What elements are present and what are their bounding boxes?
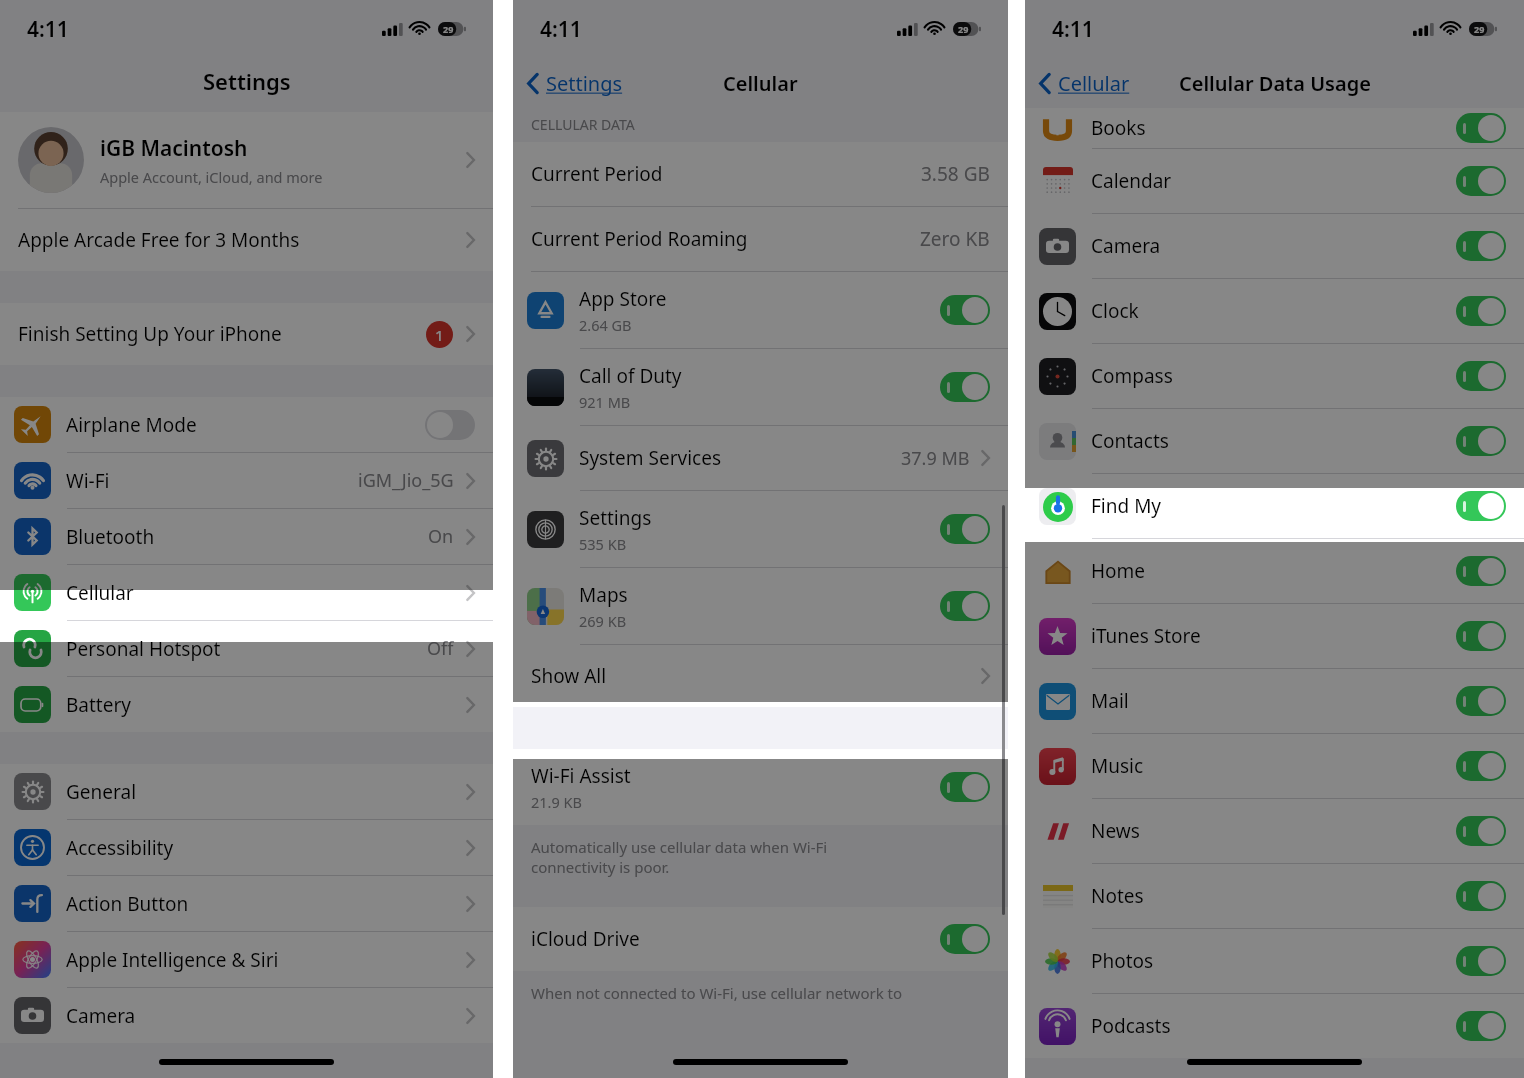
button[interactable]: Podcasts [1025,994,1524,1058]
staticText: Cellular Data Usage [1179,70,1371,97]
button[interactable]: Compass [1025,344,1524,408]
staticText: 29 [958,23,969,35]
staticText: Settings [579,505,652,531]
button[interactable]: System Services [513,426,1008,490]
button[interactable]: Toggle [940,591,990,621]
button[interactable]: Toggle [1456,361,1506,391]
staticText: 29 [443,23,454,35]
button[interactable]: Finish Setting Up Your iPhone [0,303,493,365]
button[interactable]: Toggle [1456,751,1506,781]
button[interactable]: App Store [513,272,1008,348]
button[interactable]: Bluetooth [0,509,493,564]
staticText: Zero KB [920,226,990,252]
staticText: Podcasts [1091,1013,1171,1039]
button[interactable]: Photos [1025,929,1524,993]
button[interactable]: News [1025,799,1524,863]
button[interactable]: Call of Duty [513,349,1008,425]
button[interactable]: Current Period Roaming [513,207,1008,271]
staticText: Compass [1091,363,1173,389]
staticText: Clock [1091,298,1139,324]
staticText: Personal Hotspot [66,636,221,662]
staticText: 921 MB [579,392,631,412]
button[interactable]: Home [1025,539,1524,603]
staticText: iGM_Jio_5G [358,468,454,493]
button[interactable]: Show All [513,645,1008,707]
staticText: Finish Setting Up Your iPhone [18,321,282,347]
button[interactable]: Action Button [0,876,493,931]
staticText: Calendar [1091,168,1172,194]
button[interactable]: Toggle [1456,556,1506,586]
button[interactable]: Battery [0,677,493,732]
button[interactable]: Airplane Mode [0,397,493,452]
staticText: 4:11 [27,15,69,44]
button[interactable]: Toggle [1456,113,1506,143]
button[interactable]: Toggle [940,295,990,325]
staticText: Action Button [66,891,189,917]
button[interactable]: Toggle [1456,166,1506,196]
button[interactable]: Current Period [513,142,1008,206]
staticText: 2.64 GB [579,315,632,335]
button[interactable]: Clock [1025,279,1524,343]
button[interactable]: Camera [1025,214,1524,278]
button[interactable]: Toggle [1456,881,1506,911]
staticText: App Store [579,286,667,312]
button[interactable]: Camera [0,988,493,1043]
staticText: Music [1091,753,1144,779]
staticText: Accessibility [66,835,174,861]
staticText: General [66,779,137,805]
button[interactable]: Find My [1025,474,1524,538]
button[interactable]: General [0,764,493,819]
button[interactable]: Maps [513,568,1008,644]
button[interactable]: Accessibility [0,820,493,875]
button[interactable]: Toggle [1456,296,1506,326]
button[interactable]: Wi-Fi Assist [513,749,1008,825]
button[interactable]: Toggle [1456,491,1506,521]
staticText: Current Period [531,161,663,187]
staticText: Apple Account, iCloud, and more [100,167,323,187]
staticText: On [428,524,454,549]
staticText: iGB Macintosh [100,134,248,163]
button[interactable]: Mail [1025,669,1524,733]
button[interactable]: Toggle [940,372,990,402]
button[interactable]: iCloud Drive [513,907,1008,971]
button[interactable]: Books [1025,108,1524,148]
button[interactable]: Wi-Fi [0,453,493,508]
button[interactable]: Toggle [1456,946,1506,976]
button[interactable]: Contacts [1025,409,1524,473]
staticText: When not connected to Wi-Fi, use cellula… [531,983,903,1003]
button[interactable]: Toggle [1456,816,1506,846]
button[interactable]: Back to Settings [513,70,635,97]
button[interactable]: Toggle [940,924,990,954]
staticText: 21.9 KB [531,792,582,812]
button[interactable]: Apple Arcade Free for 3 Months [0,209,493,271]
staticText: System Services [579,445,721,471]
button[interactable]: Back to Cellular [1025,70,1142,97]
staticText: Cellular [1058,70,1130,97]
staticText: Cellular [723,70,798,97]
button[interactable]: Notes [1025,864,1524,928]
staticText: News [1091,818,1140,844]
button[interactable]: iTunes Store [1025,604,1524,668]
button[interactable]: Toggle [940,772,990,802]
button[interactable]: Airplane Mode off [425,410,475,440]
button[interactable]: Toggle [1456,621,1506,651]
button[interactable]: Music [1025,734,1524,798]
button[interactable]: Toggle [1456,231,1506,261]
staticText: Maps [579,582,628,608]
staticText: Automatically use cellular data when Wi-… [531,837,828,877]
staticText: Books [1091,115,1146,141]
button[interactable]: Apple Intelligence & Siri [0,932,493,987]
button[interactable]: Toggle [1456,426,1506,456]
staticText: 1 [435,325,444,345]
button[interactable]: Calendar [1025,149,1524,213]
button[interactable]: Toggle [1456,1011,1506,1041]
staticText: 535 KB [579,534,627,554]
staticText: Camera [1091,233,1161,259]
button[interactable]: Cellular [0,565,493,620]
button[interactable]: Settings [513,491,1008,567]
button[interactable]: Personal Hotspot [0,621,493,676]
button[interactable]: iGB Macintosh [0,112,493,208]
staticText: 3.58 GB [921,161,990,187]
button[interactable]: Toggle [1456,686,1506,716]
button[interactable]: Toggle [940,514,990,544]
